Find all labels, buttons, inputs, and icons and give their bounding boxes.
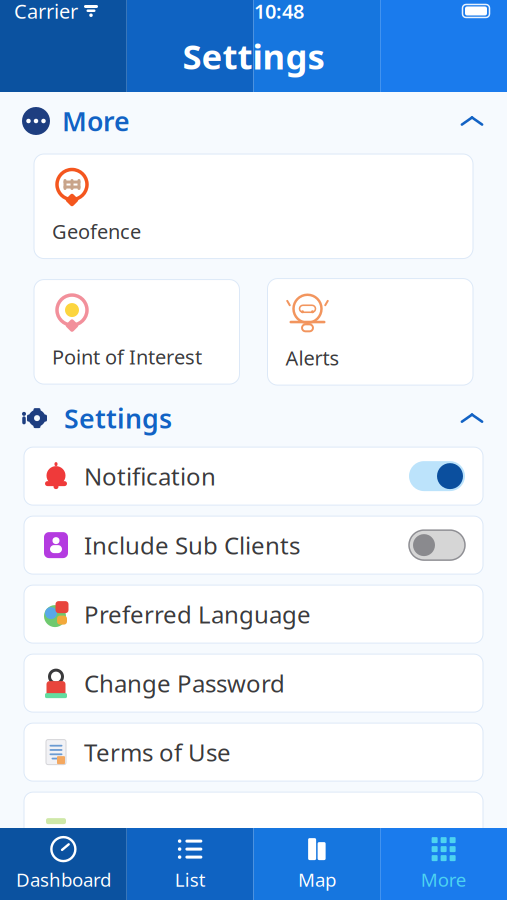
staticText: Map bbox=[298, 867, 336, 892]
staticText: More bbox=[421, 867, 467, 892]
button[interactable]: Preferred Language bbox=[24, 585, 483, 643]
button[interactable]: More bbox=[380, 828, 507, 900]
button[interactable]: Notification bbox=[24, 447, 483, 505]
button[interactable]: Map bbox=[253, 828, 380, 900]
staticText: Notification bbox=[84, 460, 216, 492]
button[interactable]: Terms of Use bbox=[24, 723, 483, 781]
staticText: Dashboard bbox=[16, 867, 111, 892]
button[interactable]: Alerts bbox=[267, 279, 473, 385]
button[interactable]: Change Password bbox=[24, 654, 483, 712]
staticText: List bbox=[175, 867, 206, 892]
button[interactable]: Settings bbox=[0, 395, 507, 441]
staticText: Change Password bbox=[84, 667, 285, 699]
button[interactable]: List bbox=[127, 828, 254, 900]
staticText: Geofence bbox=[52, 218, 141, 245]
staticText: Terms of Use bbox=[84, 736, 231, 768]
staticText: Preferred Language bbox=[84, 598, 311, 630]
button[interactable]: Dashboard bbox=[0, 828, 127, 900]
staticText: Include Sub Clients bbox=[84, 529, 300, 561]
staticText: Carrier bbox=[14, 0, 78, 24]
button[interactable] bbox=[24, 792, 483, 850]
button[interactable]: Geofence bbox=[34, 154, 473, 259]
staticText: Settings bbox=[64, 400, 172, 436]
staticText: Alerts bbox=[285, 345, 339, 371]
staticText: 10:48 bbox=[254, 0, 304, 24]
button[interactable]: More bbox=[0, 98, 507, 144]
button[interactable]: Include Sub Clients bbox=[24, 516, 483, 574]
staticText: Point of Interest bbox=[52, 344, 202, 370]
button[interactable]: Point of Interest bbox=[34, 280, 239, 384]
staticText: Settings bbox=[182, 33, 324, 79]
staticText: More bbox=[62, 103, 130, 139]
